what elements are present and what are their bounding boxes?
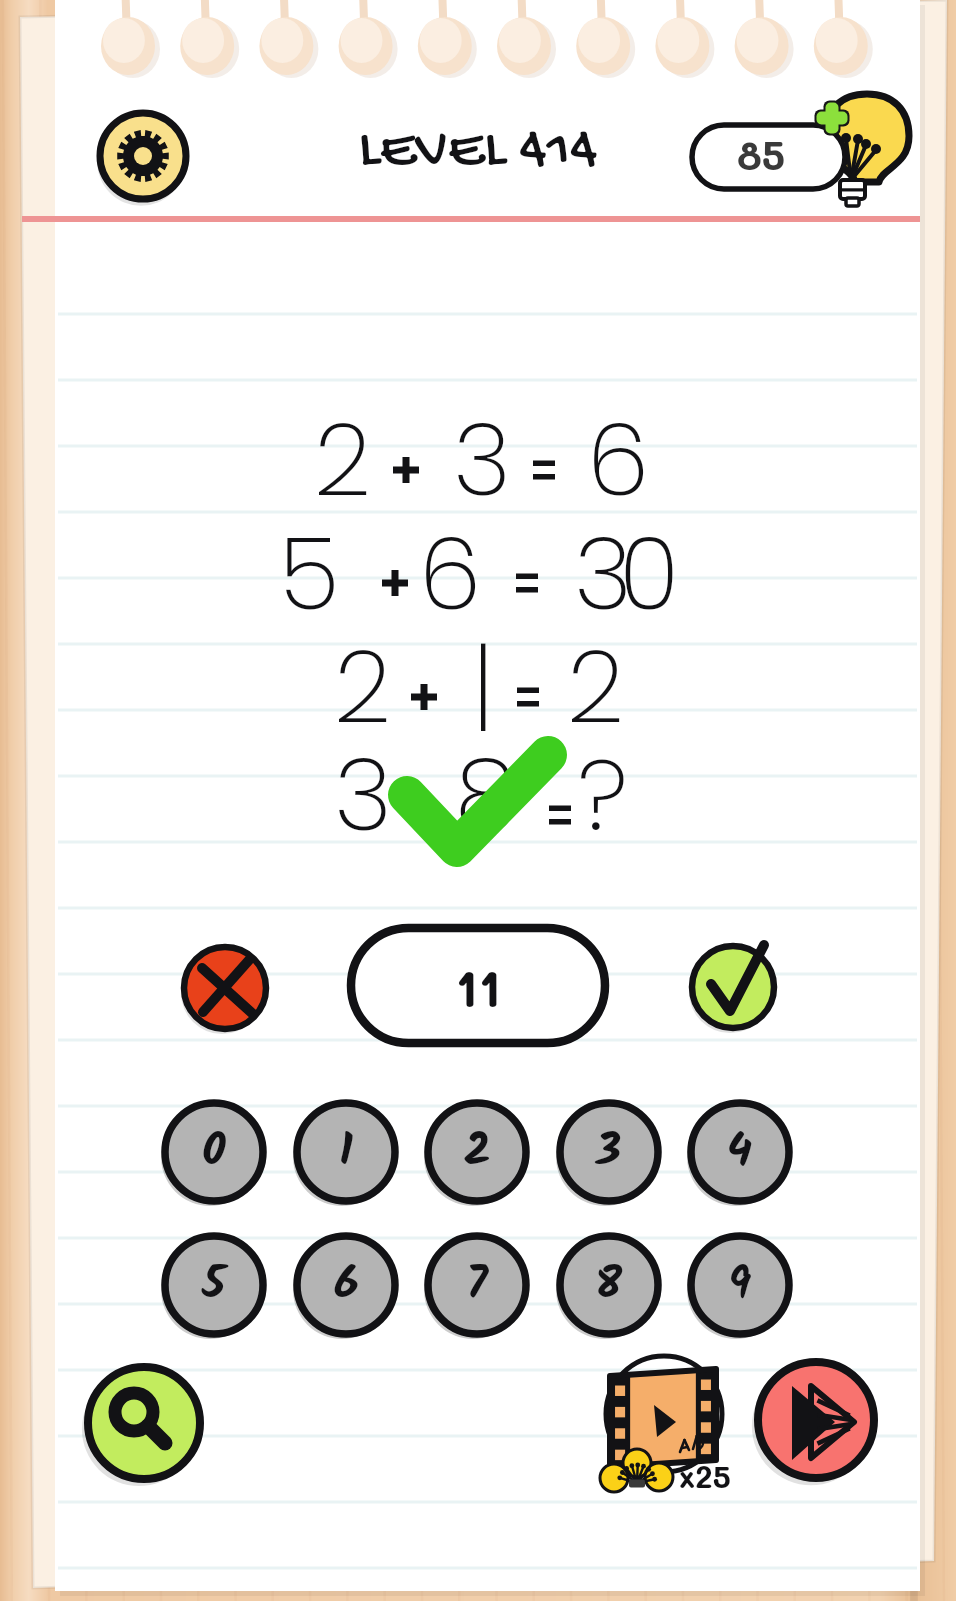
staticText: 2 xyxy=(567,617,624,757)
staticText: 8 xyxy=(455,725,517,865)
staticText: 3 xyxy=(453,390,511,530)
button[interactable]: Settings xyxy=(97,110,189,202)
button[interactable]: 7 xyxy=(424,1232,530,1338)
button[interactable]: Show hint xyxy=(86,1365,202,1481)
staticText: 5 xyxy=(202,1249,226,1322)
button[interactable]: 1 xyxy=(293,1099,399,1205)
staticText: 5 xyxy=(279,504,340,644)
staticText: 85 xyxy=(737,128,786,180)
staticText: 2 xyxy=(334,617,391,757)
button[interactable]: 9 xyxy=(687,1232,793,1338)
button[interactable]: Watch an ad for 25 hints xyxy=(595,1345,730,1500)
staticText: 3 xyxy=(574,504,632,644)
staticText: 2 xyxy=(314,390,371,530)
button[interactable]: Skip this level xyxy=(756,1360,876,1480)
staticText: 4 xyxy=(727,1116,753,1189)
button[interactable]: Clear answer xyxy=(182,945,268,1031)
staticText: 2 xyxy=(464,1116,491,1189)
staticText: 7 xyxy=(466,1249,488,1322)
staticText: 6 xyxy=(334,1249,359,1322)
staticText: 11 xyxy=(455,952,502,1020)
button[interactable]: 2 xyxy=(424,1099,530,1205)
staticText: LEVEL 414 xyxy=(358,118,598,186)
button[interactable]: 11 xyxy=(347,924,609,1047)
staticText: 6 xyxy=(587,390,650,530)
button[interactable]: 3 xyxy=(556,1099,662,1205)
staticText: 3 xyxy=(596,1116,622,1189)
button[interactable]: Buy more hints xyxy=(686,86,931,211)
staticText: x25 xyxy=(679,1455,731,1495)
button[interactable]: Submit answer xyxy=(690,944,776,1030)
staticText: 0 xyxy=(619,504,680,644)
button[interactable]: 0 xyxy=(161,1099,267,1205)
staticText: 6 xyxy=(419,504,482,644)
button[interactable]: 8 xyxy=(556,1232,662,1338)
button[interactable]: 6 xyxy=(293,1232,399,1338)
staticText: 8 xyxy=(595,1249,623,1322)
staticText: 3 xyxy=(334,725,392,865)
staticText: | xyxy=(472,617,495,757)
staticText: ? xyxy=(578,725,628,865)
staticText: 1 xyxy=(339,1116,353,1189)
button[interactable]: 4 xyxy=(687,1099,793,1205)
staticText: 9 xyxy=(728,1249,752,1322)
staticText: 0 xyxy=(202,1116,226,1189)
button[interactable]: 5 xyxy=(161,1232,267,1338)
